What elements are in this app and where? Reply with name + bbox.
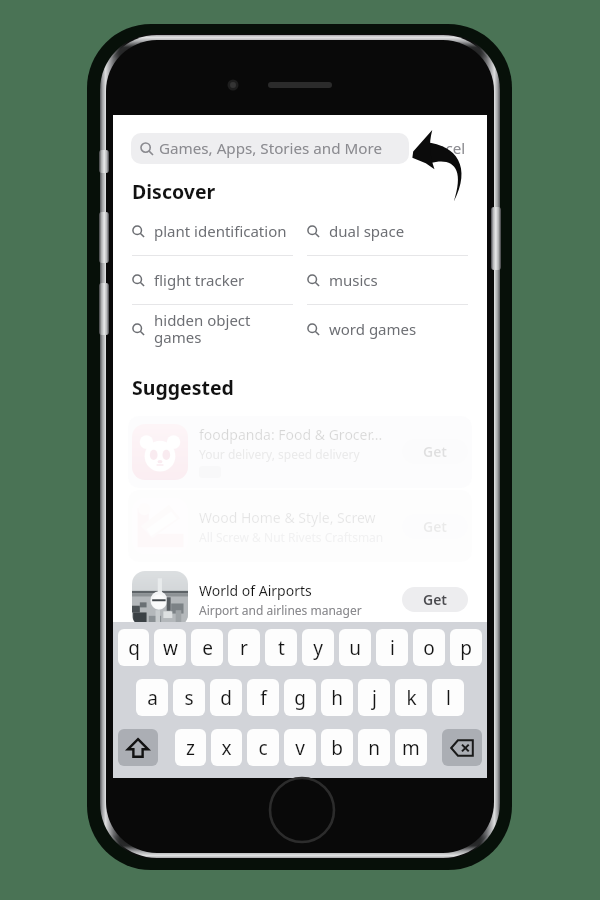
button[interactable]: u	[339, 629, 371, 666]
button[interactable]: c	[247, 729, 279, 766]
staticText: World of Airports	[199, 581, 312, 600]
button[interactable]: Get	[402, 439, 468, 464]
staticText: Get	[423, 590, 448, 609]
button[interactable]: a	[136, 679, 168, 716]
staticText: d	[220, 685, 232, 711]
staticText: m	[402, 735, 420, 761]
staticText: a	[147, 685, 158, 711]
staticText: y	[313, 635, 323, 661]
staticText: x	[221, 735, 232, 761]
staticText: r	[240, 635, 248, 661]
button[interactable]: flight tracker	[132, 256, 293, 305]
button[interactable]: g	[284, 679, 316, 716]
staticText: e	[202, 635, 213, 661]
staticText: Games, Apps, Stories and More	[159, 138, 382, 159]
staticText: g	[294, 685, 306, 711]
button[interactable]: k	[395, 679, 427, 716]
button[interactable]: hidden object games	[132, 305, 293, 353]
button[interactable]: Backspace	[442, 729, 482, 766]
staticText: Cancel	[418, 138, 466, 159]
button[interactable]: Wood Home & Style, Screw	[113, 489, 487, 563]
staticText: word games	[329, 319, 417, 339]
staticText: v	[295, 735, 305, 761]
button[interactable]: Shift	[118, 729, 158, 766]
button[interactable]: h	[321, 679, 353, 716]
button[interactable]: f	[247, 679, 279, 716]
button[interactable]: World of Airports	[113, 563, 487, 635]
button[interactable]: dual space	[307, 207, 468, 256]
staticText: j	[372, 685, 377, 711]
button[interactable]: m	[395, 729, 427, 766]
staticText: Suggested	[132, 374, 234, 401]
staticText: h	[331, 685, 343, 711]
button[interactable]: e	[191, 629, 223, 666]
staticText: s	[184, 685, 194, 711]
staticText: u	[349, 635, 361, 661]
button[interactable]: d	[210, 679, 242, 716]
staticText: Wood Home & Style, Screw	[199, 508, 376, 527]
button[interactable]: l	[432, 679, 464, 716]
button[interactable]: y	[302, 629, 334, 666]
staticText: z	[186, 735, 195, 761]
staticText: Get	[423, 442, 448, 461]
button[interactable]: plant identification	[132, 207, 293, 256]
button[interactable]: p	[450, 629, 482, 666]
staticText: Airport and airlines manager	[199, 602, 362, 618]
button[interactable]: Games, Apps, Stories and More	[131, 133, 409, 164]
button[interactable]: q	[118, 629, 149, 666]
staticText: q	[128, 635, 140, 661]
staticText: b	[331, 735, 343, 761]
button[interactable]: musics	[307, 256, 468, 305]
button[interactable]: foodpanda: Food & Grocer...	[113, 414, 487, 489]
staticText: f	[260, 685, 267, 711]
staticText: All Screw & Nut Rivets Craftsman	[199, 529, 384, 545]
staticText: Discover	[132, 178, 216, 205]
button[interactable]: r	[228, 629, 260, 666]
button[interactable]: Get	[402, 587, 468, 612]
button[interactable]: o	[413, 629, 445, 666]
button[interactable]: s	[173, 679, 205, 716]
button[interactable]: v	[284, 729, 316, 766]
staticText: l	[446, 685, 451, 711]
button[interactable]: Cancel	[418, 138, 466, 159]
staticText: flight tracker	[154, 270, 245, 290]
staticText: dual space	[329, 221, 405, 241]
button[interactable]: word games	[307, 305, 468, 353]
button[interactable]: Get	[402, 514, 468, 539]
staticText: k	[406, 685, 417, 711]
staticText: Your delivery, speed delivery	[199, 446, 360, 462]
staticText: c	[258, 735, 268, 761]
button[interactable]: n	[358, 729, 390, 766]
staticText: p	[460, 635, 472, 661]
staticText: i	[390, 635, 395, 661]
staticText: t	[278, 635, 285, 661]
button[interactable]: w	[154, 629, 186, 666]
staticText: n	[368, 735, 380, 761]
staticText: musics	[329, 270, 378, 290]
staticText: w	[163, 635, 178, 661]
button[interactable]: x	[211, 729, 242, 766]
staticText: o	[423, 635, 435, 661]
button[interactable]: j	[358, 679, 390, 716]
button[interactable]: b	[321, 729, 353, 766]
staticText: plant identification	[154, 221, 287, 241]
staticText: Get	[423, 517, 448, 536]
staticText: foodpanda: Food & Grocer...	[199, 425, 383, 444]
staticText: hidden object games	[154, 310, 251, 348]
other: Back	[409, 126, 465, 200]
button[interactable]: z	[175, 729, 206, 766]
button[interactable]: t	[265, 629, 297, 666]
button[interactable]: i	[376, 629, 408, 666]
